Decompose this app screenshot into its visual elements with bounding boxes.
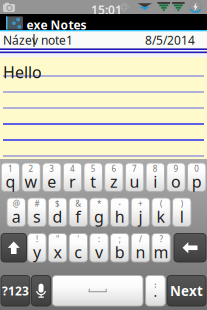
staticText: 0 [194, 163, 199, 174]
staticText: ! [36, 234, 38, 244]
button[interactable]: 7 [125, 163, 144, 191]
staticText: k [157, 206, 166, 227]
staticText: 4 [70, 163, 75, 174]
button[interactable]: Název note1 [0, 32, 207, 48]
staticText: 1 [8, 163, 13, 174]
staticText: o [171, 171, 181, 192]
staticText: : [98, 234, 100, 244]
staticText: 8 [153, 163, 158, 174]
staticText: 8/5/2014 [145, 32, 195, 48]
button[interactable]: Voice input [31, 275, 51, 306]
button[interactable]: ( [152, 198, 170, 226]
staticText: b [115, 241, 125, 263]
staticText: ' [77, 234, 79, 244]
staticText: m [154, 241, 169, 263]
staticText: Hello [3, 61, 42, 83]
staticText: g [94, 206, 104, 227]
staticText: t [90, 171, 96, 192]
button[interactable]: ? [152, 233, 170, 262]
button[interactable]: Symbols [1, 275, 30, 306]
button[interactable]: Shift [1, 233, 26, 262]
staticText: Next [170, 282, 203, 300]
staticText: @ [13, 198, 20, 209]
staticText: p [192, 171, 202, 192]
staticText: " [56, 234, 59, 244]
staticText: / [139, 234, 142, 244]
staticText: & [75, 198, 81, 209]
button[interactable]: @ [7, 198, 25, 226]
staticText: e [47, 171, 56, 192]
button[interactable]: Backspace [174, 233, 206, 262]
button[interactable]: ' [69, 233, 87, 262]
button[interactable]: Space [52, 275, 143, 306]
button[interactable]: 6 [105, 163, 123, 191]
button[interactable]: " [48, 233, 67, 262]
button[interactable]: + [131, 198, 150, 226]
staticText: ?123 [2, 283, 29, 299]
staticText: Název note1 [3, 32, 73, 48]
staticText: w [25, 171, 38, 192]
staticText: 15:01 [91, 2, 122, 18]
staticText: ( [160, 198, 162, 209]
staticText: 5 [91, 163, 96, 174]
staticText: x [54, 241, 62, 263]
staticText: h [115, 206, 125, 227]
button[interactable]: $ [48, 198, 67, 226]
staticText: q [5, 171, 15, 192]
button[interactable]: 9 [167, 163, 185, 191]
button[interactable]: 0 [187, 163, 206, 191]
staticText: exe Notes [26, 17, 86, 33]
button[interactable]: 1 [1, 163, 20, 191]
button[interactable]: 2 [22, 163, 40, 191]
staticText: i [153, 171, 157, 192]
button[interactable]: Period [146, 275, 165, 306]
button[interactable]: 4 [63, 163, 82, 191]
button[interactable]: exe Notes [6, 16, 23, 30]
staticText: z [110, 171, 118, 192]
staticText: ; [119, 234, 121, 244]
staticText: r [69, 171, 76, 192]
staticText: 7 [132, 163, 137, 174]
button[interactable]: / [131, 233, 150, 262]
staticText: 6 [111, 163, 116, 174]
staticText: f [75, 206, 81, 227]
staticText: ? [160, 234, 163, 244]
staticText: 3 [49, 163, 54, 174]
button[interactable]: 5 [84, 163, 102, 191]
staticText: d [53, 206, 63, 227]
staticText: c [74, 241, 82, 263]
staticText: v [95, 241, 103, 263]
button[interactable]: # [28, 198, 46, 226]
staticText: l [180, 206, 184, 227]
staticText: * [97, 198, 101, 209]
button[interactable]: ; [110, 233, 129, 262]
staticText: ) [181, 198, 183, 209]
button[interactable]: : [90, 233, 108, 262]
staticText: y [33, 241, 41, 263]
button[interactable]: ) [173, 198, 191, 226]
button[interactable]: - [110, 198, 129, 226]
staticText: a [12, 206, 21, 227]
staticText: j [138, 206, 142, 227]
staticText: u [130, 171, 140, 192]
button[interactable]: ! [28, 233, 46, 262]
staticText: 9 [173, 163, 178, 174]
button[interactable]: 3 [43, 163, 61, 191]
staticText: - [118, 198, 121, 209]
staticText: + [138, 198, 143, 209]
staticText: 2 [29, 163, 34, 174]
button[interactable]: * [90, 198, 108, 226]
button[interactable]: & [69, 198, 87, 226]
button[interactable]: Next [167, 275, 206, 306]
button[interactable]: 8 [146, 163, 164, 191]
staticText: $ [55, 198, 60, 209]
staticText: s [33, 206, 41, 227]
staticText: # [34, 198, 39, 209]
staticText: n [135, 241, 145, 263]
